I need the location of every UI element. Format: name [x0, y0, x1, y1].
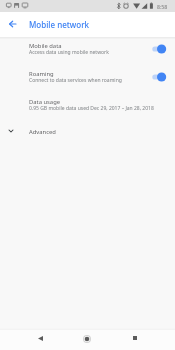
staticText: 0.95 GB mobile data used Dec 29, 2017 – … — [29, 105, 154, 112]
button[interactable]: Back — [28, 330, 52, 350]
button[interactable]: Advanced — [0, 123, 175, 141]
staticText: 8:58 — [157, 3, 168, 10]
staticText: Connect to data services when roaming — [29, 77, 122, 84]
button[interactable]: Navigate up — [0, 12, 26, 37]
button[interactable]: Home — [75, 330, 99, 350]
button[interactable]: Data usage — [0, 98, 175, 126]
staticText: Access data using mobile network — [29, 49, 109, 56]
button[interactable]: Recent apps — [123, 330, 147, 350]
button[interactable]: Toggle — [152, 41, 175, 57]
staticText: Mobile data — [29, 42, 62, 50]
button[interactable]: Roaming — [0, 70, 175, 98]
button[interactable]: Toggle — [152, 69, 175, 85]
staticText: Advanced — [29, 128, 56, 136]
staticText: Mobile network — [29, 19, 90, 30]
staticText: Roaming — [29, 70, 54, 78]
staticText: Data usage — [29, 98, 61, 106]
button[interactable]: Mobile data — [0, 42, 175, 70]
